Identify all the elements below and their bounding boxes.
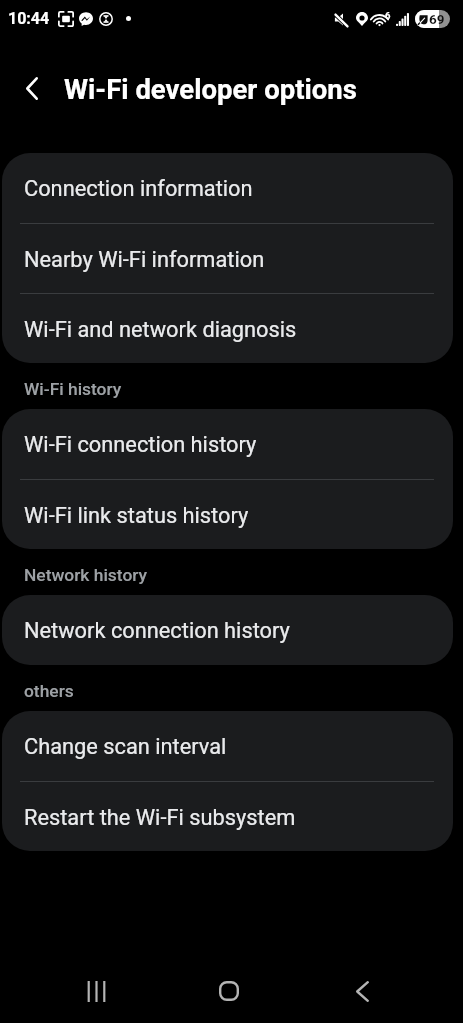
button[interactable]: Restart the Wi-Fi subsystem <box>2 782 453 851</box>
staticText: Connection information <box>24 176 253 202</box>
button[interactable]: Connection information <box>2 153 453 223</box>
staticText: others <box>24 681 74 701</box>
staticText: Wi-Fi developer options <box>64 73 357 105</box>
staticText: Wi-Fi connection history <box>24 432 257 458</box>
button[interactable]: Wi-Fi connection history <box>2 409 453 479</box>
staticText: Restart the Wi-Fi subsystem <box>24 805 296 831</box>
staticText: Wi-Fi and network diagnosis <box>24 317 297 343</box>
button[interactable]: Network connection history <box>2 595 453 665</box>
button[interactable]: Back <box>328 960 396 1022</box>
staticText: 10:44 <box>8 9 50 28</box>
button[interactable]: Wi-Fi link status history <box>2 480 453 549</box>
staticText: 69 <box>429 11 445 27</box>
staticText: Nearby Wi-Fi information <box>24 247 265 273</box>
staticText: Change scan interval <box>24 734 227 760</box>
button[interactable]: Recent apps <box>62 960 130 1022</box>
button[interactable]: Navigate up <box>10 66 54 110</box>
button[interactable]: Wi-Fi and network diagnosis <box>2 294 453 363</box>
button[interactable]: Nearby Wi-Fi information <box>2 224 453 293</box>
staticText: Wi-Fi link status history <box>24 503 249 529</box>
button[interactable]: Home <box>195 960 263 1022</box>
button[interactable]: Change scan interval <box>2 711 453 781</box>
staticText: Network history <box>24 565 148 585</box>
staticText: Network connection history <box>24 618 290 644</box>
staticText: Wi-Fi history <box>24 379 122 399</box>
staticText: 6 <box>385 10 391 21</box>
